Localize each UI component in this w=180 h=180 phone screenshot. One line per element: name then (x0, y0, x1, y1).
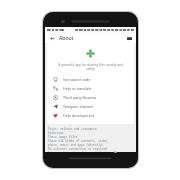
button[interactable]: Help development (47, 111, 134, 120)
staticText: Telegram channel (63, 104, 94, 109)
staticText: Share all kinds of contents, video, (48, 139, 109, 143)
button[interactable]: Help us translate (47, 84, 134, 93)
button[interactable]: Back (48, 34, 56, 42)
staticText: Help us translate (63, 86, 92, 91)
staticText: Rsync: release and insurance (48, 127, 97, 131)
staticText: A powerful app for sharing files quickly… (56, 63, 125, 71)
staticText: brokerage (48, 131, 64, 135)
staticText: Help development (63, 113, 94, 118)
staticText: No internet connection is required (48, 147, 107, 151)
staticText: Set up a hotspot and connect the to (48, 151, 109, 152)
button[interactable]: Options (125, 34, 133, 42)
staticText: About (59, 35, 74, 42)
staticText: See source code (63, 77, 91, 82)
staticText: photo, music and apps (directly) (48, 143, 104, 147)
staticText: Share image files (48, 135, 78, 139)
button[interactable]: See source code (47, 75, 134, 84)
button[interactable]: Telegram channel (47, 102, 134, 111)
staticText: Third party libraries (63, 95, 97, 100)
button[interactable]: Third party libraries (47, 93, 134, 102)
